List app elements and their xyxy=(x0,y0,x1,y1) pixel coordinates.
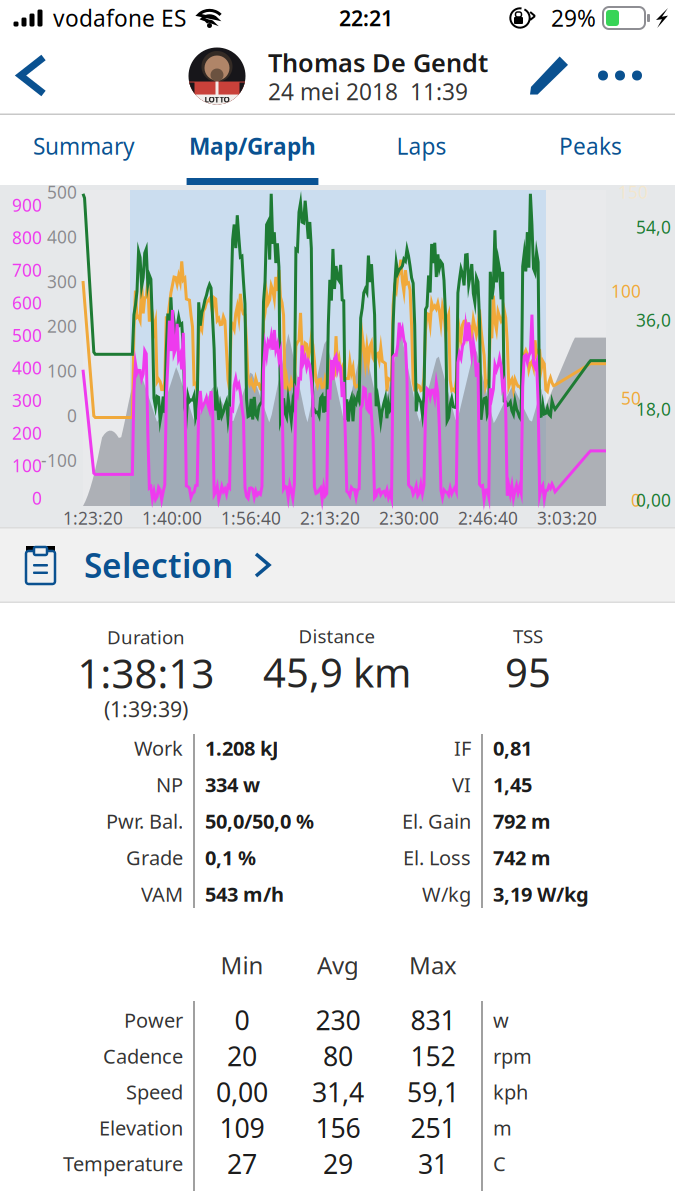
staticText: 2:30:00 xyxy=(379,506,439,529)
staticText: 500 xyxy=(47,180,77,203)
staticText: El. Gain xyxy=(402,808,471,834)
staticText: 45,9 km xyxy=(263,645,411,698)
staticText: Peaks xyxy=(559,131,622,161)
staticText: m xyxy=(493,1114,512,1141)
button[interactable]: Peaks xyxy=(506,115,675,185)
button[interactable]: Back xyxy=(0,36,64,115)
staticText: 152 xyxy=(410,1038,455,1074)
staticText: 0 xyxy=(631,488,641,511)
staticText: w xyxy=(493,1007,509,1033)
staticText: 0 xyxy=(234,1002,249,1038)
staticText: 100 xyxy=(611,279,641,302)
button[interactable]: More options xyxy=(586,36,654,115)
staticText: 31 xyxy=(418,1146,448,1181)
staticText: 156 xyxy=(315,1110,360,1145)
staticText: Distance xyxy=(298,624,375,648)
staticText: 3:03:20 xyxy=(537,506,597,529)
staticText: rpm xyxy=(493,1043,532,1069)
staticText: Pwr. Bal. xyxy=(106,808,183,834)
button[interactable]: Laps xyxy=(337,115,506,185)
staticText: 1:23:20 xyxy=(63,506,123,529)
staticText: 36,0 xyxy=(636,308,671,331)
staticText: 0 xyxy=(32,486,42,509)
staticText: 1:56:40 xyxy=(221,506,281,529)
staticText: 31,4 xyxy=(312,1074,364,1109)
staticText: 150 xyxy=(618,180,648,203)
staticText: 700 xyxy=(12,259,42,282)
staticText: C xyxy=(493,1150,506,1177)
staticText: vodafone ES xyxy=(53,3,186,33)
staticText: Summary xyxy=(33,131,135,161)
staticText: 80 xyxy=(323,1038,353,1074)
staticText: 251 xyxy=(410,1110,455,1145)
staticText: 18,0 xyxy=(636,397,671,420)
staticText: Avg xyxy=(317,949,359,981)
button[interactable]: Edit xyxy=(516,36,582,115)
staticText: 20 xyxy=(227,1038,257,1074)
staticText: 1:40:00 xyxy=(142,506,202,529)
staticText: 334 w xyxy=(205,771,260,798)
staticText: Work xyxy=(134,735,183,761)
staticText: 29% xyxy=(551,3,596,33)
staticText: 0,00 xyxy=(216,1074,268,1109)
staticText: Power xyxy=(124,1007,183,1033)
staticText: 800 xyxy=(12,226,42,249)
staticText: 59,1 xyxy=(407,1074,459,1109)
staticText: IF xyxy=(454,735,471,761)
staticText: VI xyxy=(452,771,471,798)
staticText: 600 xyxy=(12,291,42,314)
staticText: LOTTO xyxy=(204,94,229,105)
staticText: Cadence xyxy=(103,1043,183,1069)
staticText: 400 xyxy=(47,225,77,248)
staticText: 543 m/h xyxy=(205,881,284,907)
staticText: 0,81 xyxy=(493,735,532,761)
staticText: Laps xyxy=(396,131,446,161)
staticText: 0 xyxy=(67,404,77,427)
staticText: 742 m xyxy=(493,844,551,871)
staticText: 400 xyxy=(12,356,42,379)
staticText: 300 xyxy=(12,389,42,412)
staticText: kph xyxy=(493,1078,528,1105)
staticText: Min xyxy=(220,949,263,981)
staticText: (1:39:39) xyxy=(104,695,188,723)
staticText: Thomas De Gendt xyxy=(268,46,488,79)
staticText: W/kg xyxy=(422,881,471,907)
staticText: 230 xyxy=(315,1002,360,1038)
staticText: NP xyxy=(156,771,183,798)
button[interactable]: Selection xyxy=(0,527,675,603)
staticText: 1:38:13 xyxy=(77,646,214,699)
staticText: 50,0/50,0 % xyxy=(205,808,314,834)
button[interactable]: Map/Graph xyxy=(168,115,337,185)
staticText: 100 xyxy=(47,359,77,382)
staticText: Grade xyxy=(126,844,183,871)
staticText: Duration xyxy=(107,625,185,649)
staticText: 831 xyxy=(410,1002,455,1038)
staticText: 500 xyxy=(12,324,42,347)
staticText: 29 xyxy=(323,1146,353,1181)
staticText: 109 xyxy=(219,1110,264,1145)
staticText: Temperature xyxy=(63,1150,183,1177)
staticText: 2:13:20 xyxy=(300,506,360,529)
staticText: TSS xyxy=(513,624,543,648)
staticText: 50 xyxy=(621,386,641,409)
staticText: 2:46:40 xyxy=(458,506,518,529)
staticText: Selection xyxy=(84,543,233,587)
staticText: 1.208 kJ xyxy=(205,735,279,761)
staticText: 0,1 % xyxy=(205,844,256,871)
staticText: 24 mei 2018 xyxy=(268,76,398,106)
staticText: 100 xyxy=(12,454,42,477)
staticText: -100 xyxy=(41,449,77,472)
staticText: 300 xyxy=(47,270,77,293)
staticText: 200 xyxy=(12,421,42,444)
staticText: El. Loss xyxy=(403,844,471,871)
staticText: 200 xyxy=(47,315,77,338)
staticText: 22:21 xyxy=(339,4,393,32)
staticText: 11:39 xyxy=(410,76,468,106)
staticText: 1,45 xyxy=(493,771,532,798)
button[interactable]: Summary xyxy=(0,115,168,185)
staticText: 27 xyxy=(227,1146,257,1181)
staticText: Map/Graph xyxy=(189,131,316,161)
staticText: 900 xyxy=(12,193,42,216)
staticText: 0,00 xyxy=(636,488,671,511)
staticText: Max xyxy=(409,949,457,981)
